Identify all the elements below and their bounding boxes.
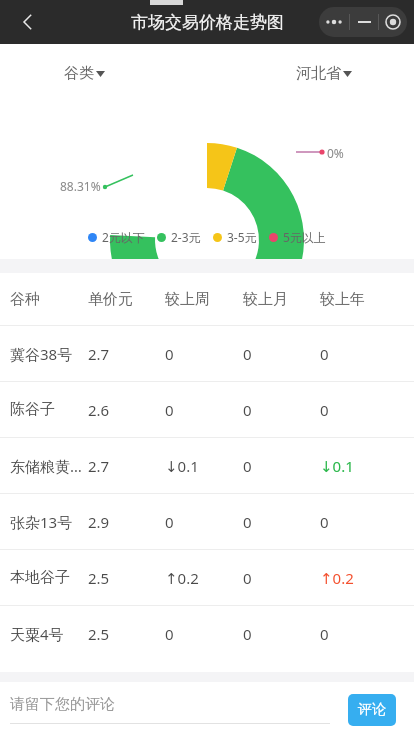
button[interactable]: 陈谷子: [0, 382, 414, 437]
button[interactable]: Back: [6, 0, 50, 44]
staticText: ↑0.2: [320, 568, 354, 588]
staticText: 天粟4号: [10, 624, 64, 644]
button[interactable]: 请留下您的评论: [10, 695, 330, 724]
staticText: ↓0.1: [320, 456, 354, 476]
staticText: 谷类: [64, 64, 94, 83]
staticText: 东储粮黄…: [10, 456, 82, 476]
button[interactable]: 5元以上: [269, 229, 326, 245]
staticText: 0: [320, 512, 329, 532]
staticText: 2.7: [88, 344, 110, 364]
button[interactable]: 天粟4号: [0, 606, 414, 661]
staticText: 88.31%: [60, 178, 101, 194]
staticText: 请留下您的评论: [10, 695, 115, 714]
staticText: 2.9: [88, 512, 110, 532]
staticText: 2.6: [88, 400, 110, 420]
button[interactable]: 本地谷子: [0, 550, 414, 605]
staticText: 0: [243, 624, 252, 644]
staticText: 3-5元: [227, 229, 257, 245]
staticText: 陈谷子: [10, 400, 55, 419]
staticText: 冀谷38号: [10, 344, 73, 364]
staticText: 0: [165, 624, 174, 644]
staticText: 0: [243, 400, 252, 420]
button[interactable]: 谷种: [0, 273, 414, 325]
staticText: 较上月: [243, 290, 288, 309]
button[interactable]: 2元以下: [88, 229, 145, 245]
button[interactable]: 2-3元: [157, 229, 201, 245]
staticText: 2.7: [88, 456, 110, 476]
staticText: 0%: [327, 145, 344, 161]
staticText: 市场交易价格走势图: [131, 12, 284, 33]
button[interactable]: 谷类: [62, 62, 107, 85]
button[interactable]: 3-5元: [213, 229, 257, 245]
button[interactable]: 河北省: [294, 62, 354, 85]
staticText: 0: [320, 624, 329, 644]
staticText: 2.5: [88, 568, 110, 588]
staticText: 2.5: [88, 624, 110, 644]
staticText: 0: [243, 456, 252, 476]
staticText: 0: [243, 512, 252, 532]
button[interactable]: Menu: [319, 7, 407, 37]
staticText: 0: [320, 344, 329, 364]
staticText: 本地谷子: [10, 568, 70, 587]
staticText: 0: [243, 344, 252, 364]
staticText: 0: [165, 400, 174, 420]
staticText: 谷种: [10, 290, 40, 309]
staticText: 0: [320, 400, 329, 420]
staticText: 5元以上: [283, 229, 326, 245]
button[interactable]: 东储粮黄…: [0, 438, 414, 493]
button[interactable]: 冀谷38号: [0, 326, 414, 381]
staticText: 河北省: [296, 64, 341, 83]
button[interactable]: 评论: [348, 694, 396, 726]
staticText: 张杂13号: [10, 512, 73, 532]
staticText: ↑0.2: [165, 568, 199, 588]
staticText: 0: [243, 568, 252, 588]
button[interactable]: 张杂13号: [0, 494, 414, 549]
staticText: 2元以下: [102, 229, 145, 245]
staticText: 0: [165, 512, 174, 532]
staticText: 较上周: [165, 290, 210, 309]
staticText: 评论: [358, 701, 386, 719]
staticText: 2-3元: [171, 229, 201, 245]
staticText: 0: [165, 344, 174, 364]
staticText: 单价元: [88, 290, 133, 309]
staticText: 较上年: [320, 290, 365, 309]
staticText: ↓0.1: [165, 456, 199, 476]
